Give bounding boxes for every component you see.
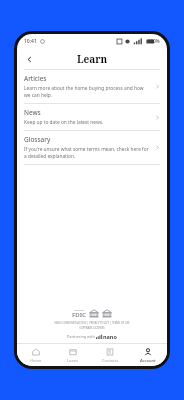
- button[interactable]: Home: [17, 344, 54, 366]
- button[interactable]: Contacts: [91, 344, 129, 366]
- staticText: nano: [103, 333, 117, 340]
- button[interactable]: Articles: [17, 70, 167, 103]
- button[interactable]: Back: [21, 51, 37, 67]
- staticText: Partnering with: [67, 334, 96, 339]
- staticText: News: [24, 108, 41, 117]
- button[interactable]: Loans: [54, 344, 91, 366]
- button[interactable]: Account: [129, 344, 167, 366]
- button[interactable]: Glossary: [17, 131, 167, 164]
- staticText: 10:41: [24, 38, 37, 45]
- staticText: 100%: [148, 38, 160, 44]
- staticText: Member: [74, 308, 84, 311]
- button[interactable]: News: [17, 104, 167, 130]
- staticText: Glossary: [24, 135, 51, 144]
- staticText: Loans: [67, 358, 79, 363]
- staticText: Learn: [77, 52, 108, 66]
- staticText: Contacts: [102, 358, 119, 363]
- staticText: Articles: [24, 74, 47, 83]
- staticText: Learn more about the home buying process…: [24, 85, 151, 99]
- staticText: Account: [140, 358, 156, 363]
- staticText: If you're unsure what some terms mean, c…: [24, 146, 151, 160]
- staticText: SOFTWARE LICENSES: [79, 326, 105, 330]
- staticText: NMLS CONSUMER ACCESS | PRIVACY POLICY | …: [54, 321, 130, 325]
- staticText: Home: [30, 358, 42, 363]
- staticText: FDIC: [72, 311, 86, 319]
- staticText: Keep up to date on the latest news.: [24, 119, 104, 126]
